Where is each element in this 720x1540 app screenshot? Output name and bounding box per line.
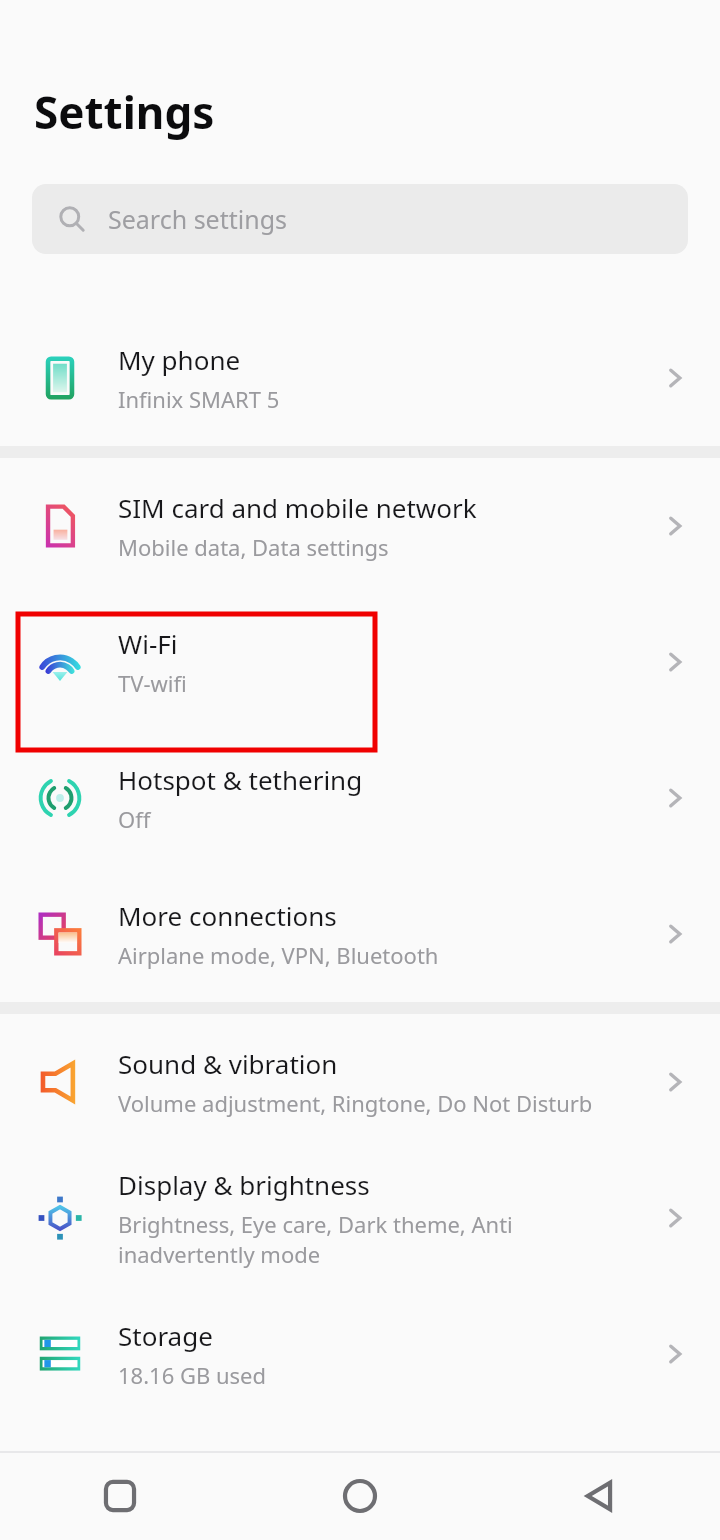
staticText: My phone <box>118 342 241 377</box>
staticText: Infinix SMART 5 <box>118 384 280 414</box>
staticText: Display & brightness <box>118 1167 370 1202</box>
button[interactable]: Back <box>480 1452 720 1540</box>
staticText: Search settings <box>108 202 288 236</box>
staticText: Wi-Fi <box>118 626 178 661</box>
staticText: Hotspot & tethering <box>118 762 363 797</box>
button[interactable]: SIM card and mobile network <box>0 458 720 594</box>
staticText: Settings <box>34 82 215 142</box>
staticText: More connections <box>118 898 337 933</box>
button[interactable]: Search settings <box>32 184 688 254</box>
button[interactable]: Sound & vibration <box>0 1014 720 1150</box>
staticText: 18.16 GB used <box>118 1360 267 1390</box>
staticText: Sound & vibration <box>118 1046 338 1081</box>
staticText: Brightness, Eye care, Dark theme, Anti i… <box>118 1209 513 1269</box>
staticText: Airplane mode, VPN, Bluetooth <box>118 940 439 970</box>
button[interactable]: Display & brightness <box>0 1150 720 1286</box>
staticText: Volume adjustment, Ringtone, Do Not Dist… <box>118 1088 593 1118</box>
staticText: Off <box>118 804 151 834</box>
staticText: SIM card and mobile network <box>118 490 477 525</box>
button[interactable]: My phone <box>0 310 720 446</box>
button[interactable]: Home <box>240 1452 480 1540</box>
button[interactable]: More connections <box>0 866 720 1002</box>
button[interactable]: Recent apps <box>0 1452 240 1540</box>
staticText: Storage <box>118 1318 213 1353</box>
button[interactable]: Hotspot & tethering <box>0 730 720 866</box>
button[interactable]: Storage <box>0 1286 720 1422</box>
staticText: TV-wifi <box>118 668 187 698</box>
button[interactable]: Wi-Fi <box>0 594 720 730</box>
staticText: Mobile data, Data settings <box>118 532 389 562</box>
